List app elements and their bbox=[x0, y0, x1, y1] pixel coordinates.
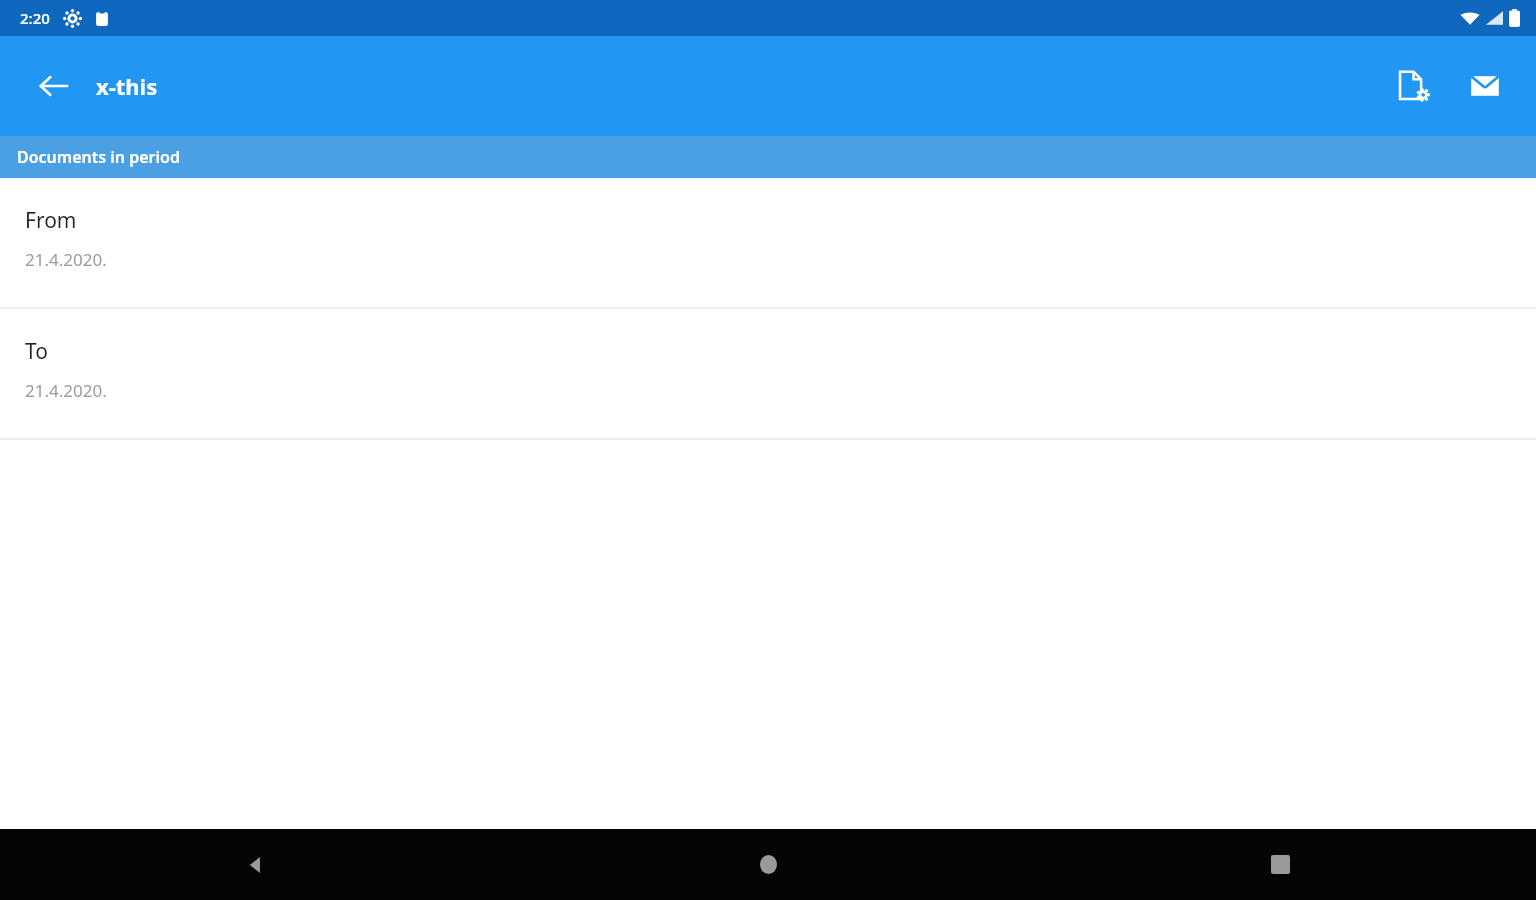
button[interactable]: Mail bbox=[1456, 57, 1514, 115]
staticText: x-this bbox=[96, 71, 158, 101]
staticText: 21.4.2020. bbox=[25, 379, 107, 402]
button[interactable]: From bbox=[0, 178, 1536, 307]
button[interactable]: Recents bbox=[1024, 829, 1536, 900]
staticText: From bbox=[25, 206, 77, 235]
button[interactable]: Home bbox=[512, 829, 1024, 900]
button[interactable]: Document settings bbox=[1386, 57, 1444, 115]
staticText: 2:20 bbox=[20, 8, 50, 28]
button[interactable]: To bbox=[0, 309, 1536, 438]
staticText: 21.4.2020. bbox=[25, 248, 107, 271]
staticText: To bbox=[25, 337, 48, 366]
staticText: Documents in period bbox=[17, 146, 180, 168]
button[interactable]: Back bbox=[0, 829, 512, 900]
button[interactable]: Back bbox=[26, 58, 82, 114]
